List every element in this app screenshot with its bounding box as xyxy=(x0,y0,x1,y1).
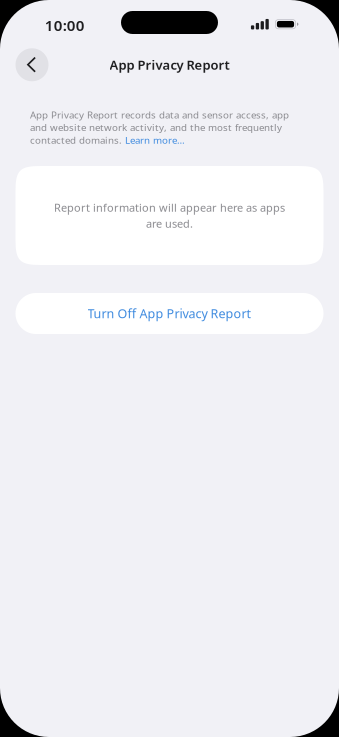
staticText: App Privacy Report xyxy=(109,56,229,74)
staticText: Turn Off App Privacy Report xyxy=(87,305,251,322)
staticText: Learn more… xyxy=(125,133,185,147)
staticText: 10:00 xyxy=(45,15,85,35)
staticText: Report information will appear here as a… xyxy=(54,200,285,215)
button[interactable]: Turn Off App Privacy Report xyxy=(15,293,323,334)
staticText: and website network activity, and the mo… xyxy=(30,121,282,134)
button[interactable]: Back xyxy=(15,48,48,81)
staticText: are used. xyxy=(146,216,193,231)
staticText: App Privacy Report records data and sens… xyxy=(30,108,289,121)
button[interactable]: Learn more… xyxy=(125,133,185,147)
staticText: contacted domains. xyxy=(30,133,125,147)
